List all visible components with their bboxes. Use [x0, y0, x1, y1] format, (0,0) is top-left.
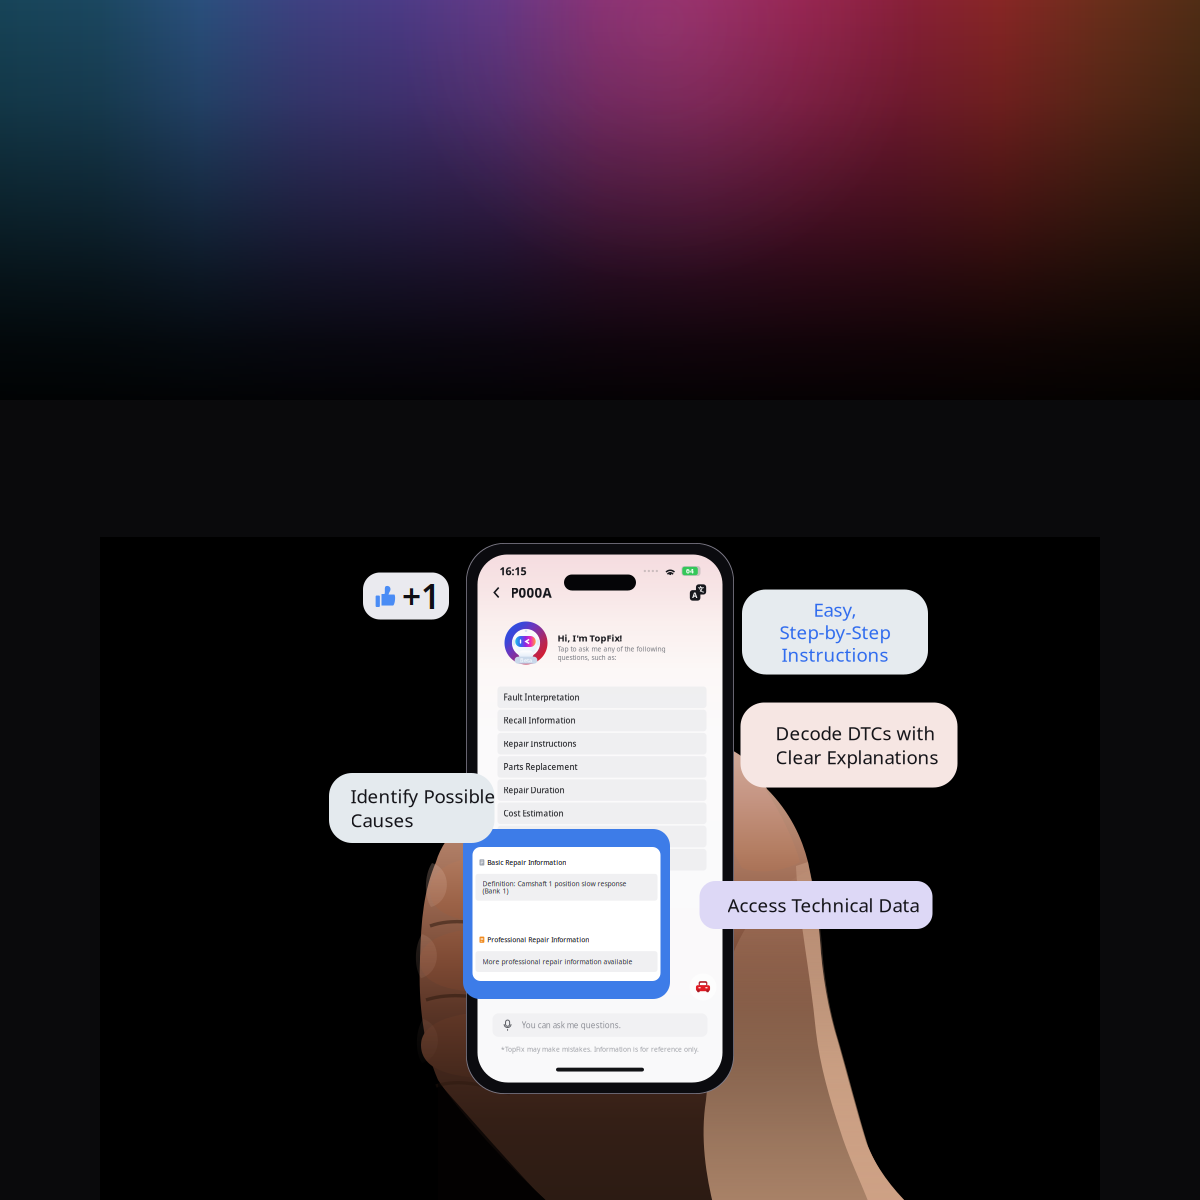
button[interactable]: You can ask me questions.: [492, 1013, 707, 1037]
staticText: 文: [698, 585, 705, 593]
button[interactable]: Decode DTCs with: [740, 702, 957, 787]
button[interactable]: Cost Estimation: [497, 802, 706, 824]
button[interactable]: Fault Interpretation: [497, 686, 706, 708]
button[interactable]: Diagnostic Steps: [497, 826, 706, 847]
staticText: Definition: Camshaft 1 position slow res…: [482, 879, 626, 888]
staticText: Causes: [350, 808, 413, 832]
button[interactable]: Vehicle: [689, 973, 716, 1000]
staticText: You can ask me questions.: [522, 1020, 621, 1030]
staticText: Instructions: [781, 642, 888, 667]
button[interactable]: Technical Data: [497, 849, 706, 870]
staticText: Beta: [520, 657, 532, 664]
staticText: Technical Data: [503, 854, 560, 865]
staticText: Professional Repair Information: [487, 935, 589, 944]
staticText: P000A: [510, 584, 551, 601]
staticText: Identify Possible: [350, 784, 495, 808]
staticText: Parts Replacement: [503, 762, 577, 772]
button[interactable]: Easy,: [742, 589, 928, 674]
button[interactable]: Repair Duration: [497, 779, 706, 801]
staticText: +1: [402, 574, 440, 618]
staticText: questions, such as:: [557, 653, 616, 662]
staticText: 64: [686, 567, 694, 575]
button[interactable]: Back: [493, 579, 557, 606]
staticText: Step-by-Step: [779, 620, 890, 644]
staticText: Hi, I'm TopFix!: [557, 632, 622, 644]
button[interactable]: Recall Information: [497, 710, 706, 731]
staticText: Basic Repair Information: [487, 858, 566, 867]
staticText: Tap to ask me any of the following: [557, 644, 665, 653]
staticText: 16:15: [499, 564, 526, 578]
staticText: (Bank 1): [482, 886, 508, 895]
staticText: More professional repair information ava…: [482, 957, 632, 966]
staticText: Repair Duration: [503, 785, 564, 795]
staticText: Clear Explanations: [775, 745, 938, 769]
button[interactable]: Identify Possible: [329, 773, 495, 843]
staticText: Repair Instructions: [503, 738, 576, 749]
staticText: Decode DTCs with: [775, 721, 935, 745]
staticText: *TopFix may make mistakes. Information i…: [501, 1045, 699, 1054]
staticText: Easy,: [813, 597, 856, 622]
staticText: Access Technical Data: [727, 893, 919, 917]
staticText: Cost Estimation: [503, 808, 563, 819]
button[interactable]: Parts Replacement: [497, 756, 706, 778]
staticText: Fault Interpretation: [503, 692, 579, 703]
button[interactable]: Access Technical Data: [699, 881, 932, 929]
staticText: Recall Information: [503, 715, 575, 726]
button[interactable]: Translate: [689, 584, 706, 601]
button[interactable]: Beta: [477, 603, 722, 664]
button[interactable]: Repair Instructions: [497, 733, 706, 754]
button[interactable]: +1: [363, 572, 449, 619]
staticText: A: [692, 590, 698, 601]
